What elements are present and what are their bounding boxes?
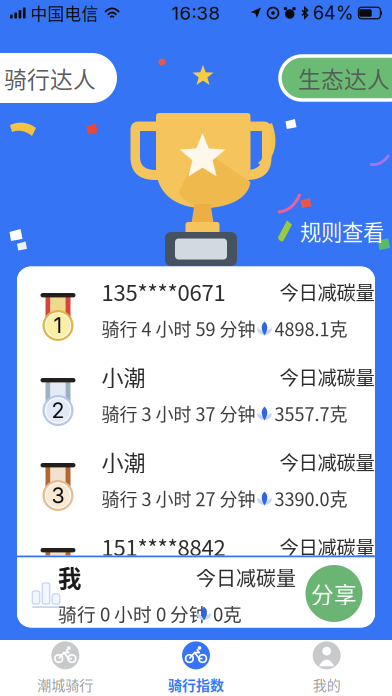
staticText: 今日减碳量	[279, 277, 374, 305]
staticText: 骑行达人	[4, 62, 96, 94]
staticText: 4898.1克	[274, 315, 347, 341]
staticText: 151****8842	[101, 530, 225, 562]
staticText: 3390.0克	[274, 485, 347, 511]
staticText: 我的	[313, 674, 341, 695]
button[interactable]: 2	[17, 350, 375, 435]
button[interactable]: 规则查看	[278, 216, 384, 246]
staticText: 潮城骑行	[37, 674, 93, 695]
staticText: 4	[51, 568, 65, 593]
staticText: 今日减碳量	[279, 447, 374, 475]
staticText: 骑行 0 小时 0 分钟	[58, 600, 208, 627]
staticText: 中国电信	[31, 1, 99, 25]
staticText: 3	[51, 483, 64, 508]
staticText: 2	[51, 398, 64, 423]
button[interactable]: 潮城骑行	[0, 641, 131, 694]
button[interactable]: 骑行指数	[131, 641, 261, 694]
staticText: 1	[53, 313, 62, 338]
button[interactable]: 4	[17, 520, 375, 605]
staticText: 骑行 3 小时 37 分钟	[101, 400, 255, 426]
staticText: 3557.7克	[274, 400, 347, 426]
button[interactable]: 我的	[261, 641, 392, 694]
staticText: 我	[58, 560, 81, 594]
staticText: 64%	[313, 2, 354, 24]
button[interactable]: 3	[17, 435, 375, 520]
button[interactable]: 生态达人	[280, 56, 392, 100]
staticText: 小潮	[101, 445, 145, 477]
button[interactable]: 骑行达人	[0, 53, 117, 103]
staticText: 16:38	[171, 2, 220, 24]
button[interactable]: 分享	[305, 565, 362, 622]
staticText: 骑行 4 小时 59 分钟	[101, 315, 255, 341]
staticText: 骑行 3 小时 27 分钟	[101, 485, 255, 511]
staticText: 135****0671	[101, 275, 225, 307]
staticText: 0克	[213, 600, 242, 627]
staticText: 今日减碳量	[196, 562, 296, 591]
staticText: 今日减碳量	[279, 362, 374, 390]
staticText: 规则查看	[300, 216, 384, 246]
staticText: 分享	[311, 577, 357, 610]
button[interactable]: 1	[17, 265, 375, 350]
staticText: 生态达人	[298, 62, 390, 94]
staticText: 今日减碳量	[279, 532, 374, 560]
staticText: 2690.1克	[274, 570, 347, 596]
staticText: 骑行指数	[168, 674, 224, 695]
staticText: 小潮	[101, 360, 145, 392]
staticText: 骑行 2 小时 41 分钟	[101, 570, 255, 596]
